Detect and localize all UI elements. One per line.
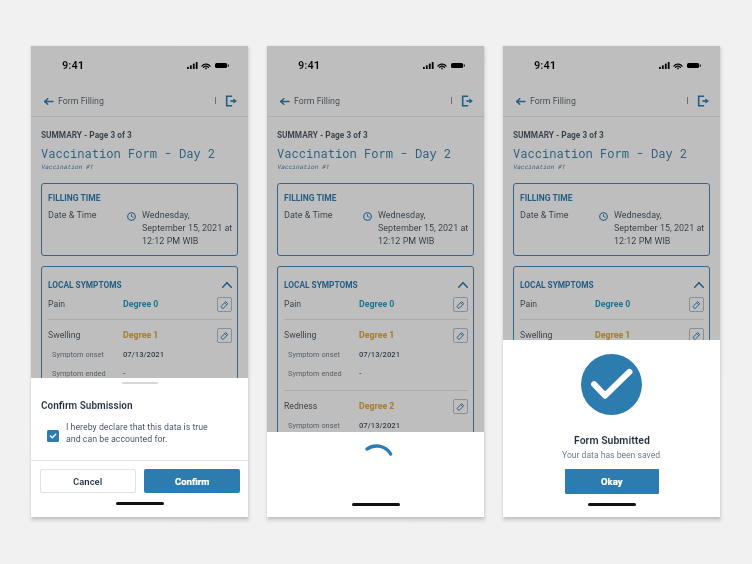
button[interactable]: Edit Redness bbox=[453, 399, 468, 414]
staticText: Swelling bbox=[48, 330, 123, 340]
staticText: - bbox=[595, 440, 598, 449]
staticText: Symptom ended bbox=[524, 369, 595, 378]
staticText: Vaccination #1 bbox=[513, 163, 565, 171]
staticText: Vaccination Form - Day 2 bbox=[277, 145, 452, 161]
button[interactable]: Back bbox=[512, 93, 528, 109]
staticText: Pain bbox=[284, 299, 359, 309]
staticText: Redness bbox=[520, 401, 595, 411]
staticText: 9:41 bbox=[534, 59, 557, 72]
staticText: FILLING TIME bbox=[48, 193, 101, 203]
staticText: Degree 0 bbox=[595, 299, 689, 309]
staticText: Confirm Submission bbox=[41, 400, 133, 412]
staticText: Date & Time bbox=[48, 210, 127, 221]
staticText: Wednesday, September 15, 2021 at 12:12 P… bbox=[614, 210, 704, 246]
staticText: Form Submitted bbox=[574, 434, 650, 446]
staticText: FILLING TIME bbox=[520, 193, 573, 203]
staticText: 07/13/2021 bbox=[359, 421, 401, 430]
staticText: Confirm bbox=[175, 476, 210, 487]
staticText: Redness bbox=[48, 401, 123, 411]
staticText: Symptom onset bbox=[52, 421, 123, 430]
staticText: SUMMARY - Page 3 of 3 bbox=[277, 130, 368, 140]
button[interactable]: Log out bbox=[460, 94, 474, 108]
staticText: Symptom ended bbox=[52, 369, 123, 378]
staticText: I hereby declare that this data is true … bbox=[66, 422, 208, 444]
staticText: Vaccination #1 bbox=[277, 163, 329, 171]
staticText: LOCAL SYMPTOMS bbox=[48, 280, 122, 290]
staticText: LOCAL SYMPTOMS bbox=[520, 280, 594, 290]
staticText: Wednesday, September 15, 2021 at 12:12 P… bbox=[142, 210, 232, 246]
staticText: 9:41 bbox=[62, 59, 85, 72]
button[interactable]: Edit Swelling bbox=[217, 328, 232, 343]
staticText: Symptom onset bbox=[288, 421, 359, 430]
staticText: Degree 2 bbox=[595, 401, 689, 411]
button[interactable]: Edit Swelling bbox=[453, 328, 468, 343]
staticText: Date & Time bbox=[520, 210, 599, 221]
staticText: Degree 1 bbox=[123, 330, 217, 340]
staticText: Pain bbox=[520, 299, 595, 309]
staticText: SUMMARY - Page 3 of 3 bbox=[41, 130, 132, 140]
staticText: Degree 2 bbox=[123, 401, 217, 411]
staticText: Swelling bbox=[284, 330, 359, 340]
button[interactable]: Edit Pain bbox=[217, 297, 232, 312]
staticText: Degree 1 bbox=[359, 330, 453, 340]
staticText: Degree 1 bbox=[595, 330, 689, 340]
button[interactable]: Edit Swelling bbox=[689, 328, 704, 343]
staticText: Redness bbox=[284, 401, 359, 411]
staticText: Degree 2 bbox=[359, 401, 453, 411]
button[interactable]: Cancel bbox=[40, 469, 136, 493]
staticText: 9:41 bbox=[298, 59, 321, 72]
button[interactable]: Back bbox=[276, 93, 292, 109]
staticText: Symptom onset bbox=[288, 350, 359, 359]
staticText: Form Filling bbox=[530, 96, 576, 106]
staticText: Date & Time bbox=[284, 210, 363, 221]
button[interactable]: Log out bbox=[224, 94, 238, 108]
staticText: Form Filling bbox=[58, 96, 104, 106]
staticText: 07/13/2021 bbox=[123, 421, 165, 430]
button[interactable]: Edit Pain bbox=[689, 297, 704, 312]
staticText: 07/13/2021 bbox=[359, 350, 401, 359]
button[interactable]: Declaration checkbox bbox=[47, 430, 59, 442]
staticText: Symptom onset bbox=[52, 350, 123, 359]
staticText: - bbox=[123, 369, 126, 378]
button[interactable]: Back bbox=[40, 93, 56, 109]
staticText: Symptom ended bbox=[52, 440, 123, 449]
staticText: LOCAL SYMPTOMS bbox=[284, 280, 358, 290]
staticText: 07/13/2021 bbox=[123, 350, 165, 359]
staticText: - bbox=[359, 369, 362, 378]
staticText: SUMMARY - Page 3 of 3 bbox=[513, 130, 604, 140]
staticText: Swelling bbox=[520, 330, 595, 340]
staticText: Cancel bbox=[73, 476, 103, 487]
staticText: Form Filling bbox=[294, 96, 340, 106]
button[interactable]: Confirm bbox=[144, 469, 240, 493]
staticText: Degree 0 bbox=[359, 299, 453, 309]
staticText: Your data has been saved bbox=[562, 450, 661, 460]
staticText: Symptom ended bbox=[288, 369, 359, 378]
button[interactable]: Edit Pain bbox=[453, 297, 468, 312]
staticText: Wednesday, September 15, 2021 at 12:12 P… bbox=[378, 210, 468, 246]
staticText: - bbox=[123, 440, 126, 449]
button[interactable]: Okay bbox=[565, 469, 659, 494]
staticText: FILLING TIME bbox=[284, 193, 337, 203]
staticText: Degree 0 bbox=[123, 299, 217, 309]
staticText: Okay bbox=[601, 476, 623, 487]
staticText: Pain bbox=[48, 299, 123, 309]
staticText: 07/13/2021 bbox=[595, 350, 637, 359]
staticText: Vaccination Form - Day 2 bbox=[513, 145, 688, 161]
staticText: Vaccination #1 bbox=[41, 163, 93, 171]
button[interactable]: Log out bbox=[696, 94, 710, 108]
staticText: Symptom ended bbox=[524, 440, 595, 449]
staticText: Vaccination Form - Day 2 bbox=[41, 145, 216, 161]
